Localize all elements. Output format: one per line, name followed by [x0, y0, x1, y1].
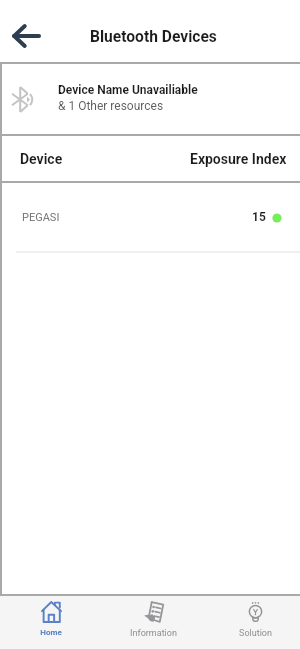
- staticText: PEGASI: [22, 211, 60, 224]
- staticText: Device Name Unavailiable: [58, 83, 198, 97]
- button[interactable]: Home: [6, 596, 96, 649]
- staticText: Exposure Index: [190, 151, 287, 167]
- staticText: 15: [252, 210, 266, 224]
- staticText: Information: [130, 628, 177, 639]
- staticText: Home: [40, 628, 62, 637]
- button[interactable]: Solution: [210, 596, 300, 649]
- button[interactable]: Information: [108, 596, 198, 649]
- staticText: Device: [20, 151, 63, 167]
- button[interactable]: PEGASI: [2, 183, 300, 251]
- staticText: Bluetooth Devices: [90, 28, 217, 46]
- staticText: Solution: [239, 628, 272, 639]
- staticText: & 1 Other resources: [58, 99, 164, 113]
- button[interactable]: Back: [12, 24, 41, 48]
